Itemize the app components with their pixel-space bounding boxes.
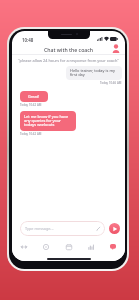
staticText: Today 10:42 AM [20, 103, 42, 107]
button[interactable]: Send [109, 223, 120, 234]
staticText: Today 10:42 AM [20, 132, 42, 136]
staticText: Today 10:46 AM [100, 81, 122, 85]
staticText: Type message... [25, 226, 96, 231]
staticText: 10:48 [22, 37, 34, 43]
button[interactable]: Workouts [14, 238, 34, 256]
button[interactable]: Schedule [59, 238, 79, 256]
staticText: "please allow 24 hours for a response fr… [14, 58, 123, 63]
button[interactable]: Profile [112, 44, 120, 53]
staticText: Great! [28, 94, 40, 99]
button[interactable]: Progress [36, 238, 56, 256]
other: Attach [96, 226, 101, 231]
staticText: Hello trainer, today is my first day [70, 68, 118, 78]
button[interactable]: Type message... [20, 221, 105, 236]
staticText: Chat with the coach [44, 46, 94, 53]
staticText: Let me know if you have any queries for … [24, 114, 72, 128]
button[interactable]: Chat [103, 238, 123, 256]
button[interactable]: Stats [81, 238, 101, 256]
